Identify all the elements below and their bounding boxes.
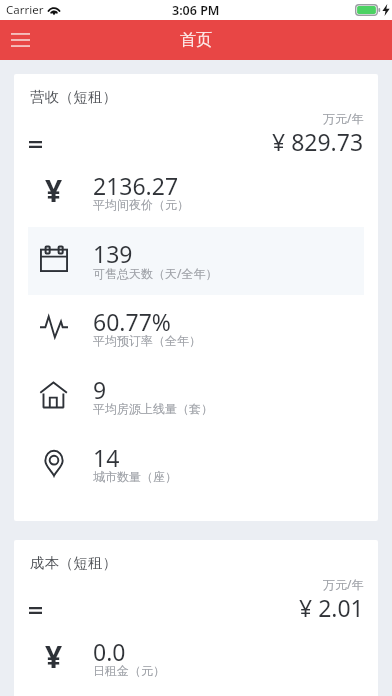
staticText: 万元/年 xyxy=(323,576,364,592)
staticText: 2136.27 xyxy=(93,170,179,201)
staticText: ¥ 2.01 xyxy=(299,592,364,623)
button[interactable]: ¥ xyxy=(28,159,364,227)
button[interactable]: 9 xyxy=(28,363,364,431)
staticText: Carrier xyxy=(6,2,44,18)
staticText: 日租金（元） xyxy=(93,663,165,678)
staticText: 平均间夜价（元） xyxy=(93,197,189,212)
button[interactable]: 14 xyxy=(28,431,364,499)
staticText: 首页 xyxy=(180,30,212,50)
button[interactable]: 60.77% xyxy=(28,295,364,363)
staticText: 0.0 xyxy=(93,636,126,667)
staticText: ¥ xyxy=(45,170,63,211)
staticText: ¥ 829.73 xyxy=(272,126,364,157)
staticText: 城市数量（座） xyxy=(93,469,177,484)
button[interactable]: ¥ xyxy=(28,625,364,693)
staticText: 平均房源上线量（套） xyxy=(93,401,213,416)
staticText: 万元/年 xyxy=(323,110,364,126)
staticText: 139 xyxy=(93,238,133,269)
staticText: 平均预订率（全年） xyxy=(93,333,201,348)
staticText: 60.77% xyxy=(93,306,171,337)
staticText: 可售总天数（天/全年） xyxy=(93,265,218,281)
button[interactable]: 139 xyxy=(28,227,364,295)
staticText: 9 xyxy=(93,374,107,405)
button[interactable]: Menu xyxy=(4,20,37,60)
staticText: 14 xyxy=(93,442,120,473)
staticText: 营收（短租） xyxy=(30,88,117,106)
staticText: 成本（短租） xyxy=(30,554,117,572)
staticText: ¥ xyxy=(45,636,63,677)
staticText: 3:06 PM xyxy=(172,2,220,19)
